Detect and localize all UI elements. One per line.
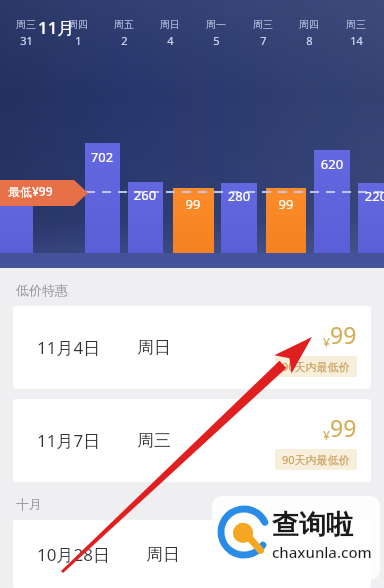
staticText: 99 xyxy=(173,195,213,213)
staticText: 220 xyxy=(356,187,384,205)
button[interactable]: 周四 xyxy=(289,18,329,48)
button[interactable]: 10月28日 xyxy=(13,520,371,588)
staticText: 低价特惠 xyxy=(16,282,68,298)
staticText: 周三 xyxy=(253,18,273,31)
button[interactable]: 周五 xyxy=(104,18,144,48)
staticText: 周三 xyxy=(137,430,171,451)
staticText: 8 xyxy=(306,33,313,48)
staticText: 1 xyxy=(75,33,82,48)
staticText: 周四 xyxy=(299,18,319,31)
staticText: 702 xyxy=(82,148,122,166)
staticText: 11月4日 xyxy=(37,336,101,359)
staticText: 14 xyxy=(350,33,363,48)
staticText: 7 xyxy=(260,33,267,48)
button[interactable]: 周三 xyxy=(336,18,376,48)
staticText: 十月 xyxy=(16,496,42,512)
button[interactable]: 周三 xyxy=(6,18,46,48)
staticText: 99 xyxy=(330,412,357,443)
button[interactable]: 最低¥99 xyxy=(8,183,53,199)
staticText: 周四 xyxy=(68,18,88,31)
other: chaxunla.com watermark xyxy=(212,496,380,580)
staticText: 280 xyxy=(219,187,259,205)
staticText: 2 xyxy=(121,33,128,48)
staticText: chaxunla.com xyxy=(272,542,372,562)
staticText: 10月28日 xyxy=(37,543,110,566)
button[interactable]: 周一 xyxy=(196,18,236,48)
staticText: 查询啦 xyxy=(272,508,353,542)
staticText: 周一 xyxy=(206,18,226,31)
button[interactable]: 周四 xyxy=(58,18,98,48)
staticText: 90天内最低价 xyxy=(282,452,350,467)
button[interactable]: 11月 xyxy=(38,16,75,39)
staticText: 4 xyxy=(167,33,174,48)
staticText: 99 xyxy=(330,319,357,350)
staticText: 99 xyxy=(266,195,306,213)
staticText: 11月 xyxy=(38,16,75,39)
staticText: 31 xyxy=(20,33,33,48)
staticText: ¥ xyxy=(323,427,330,443)
staticText: 11月7日 xyxy=(37,429,101,452)
button[interactable]: 周三 xyxy=(243,18,283,48)
button[interactable]: 11月4日 xyxy=(13,306,371,389)
staticText: ¥ xyxy=(323,334,330,350)
staticText: 最低¥99 xyxy=(8,183,53,199)
button[interactable]: 11月7日 xyxy=(13,399,371,482)
staticText: 周三 xyxy=(16,18,36,31)
staticText: 260 xyxy=(125,186,165,204)
staticText: 5 xyxy=(213,33,220,48)
staticText: 90天内最低价 xyxy=(282,359,350,374)
staticText: 周日 xyxy=(137,337,171,358)
staticText: 620 xyxy=(312,155,352,173)
staticText: 周日 xyxy=(160,18,180,31)
staticText: 周三 xyxy=(346,18,366,31)
button[interactable]: 周日 xyxy=(150,18,190,48)
staticText: 周日 xyxy=(146,544,180,565)
staticText: 周五 xyxy=(114,18,134,31)
